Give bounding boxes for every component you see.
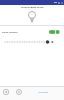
staticText: MAIN SCREEN SETUP (21, 6, 44, 9)
staticText: 4G (54, 1, 57, 4)
staticText: CUSTOM (38, 90, 49, 93)
button[interactable]: Home (16, 89, 22, 95)
button[interactable]: Back (3, 89, 9, 95)
button[interactable]: Light on off toggle (49, 29, 60, 35)
button[interactable]: LIGHT ON/OFF (0, 28, 64, 36)
staticText: LIGHT ON/OFF (2, 31, 18, 34)
button[interactable]: Brightness slider (0, 38, 64, 46)
